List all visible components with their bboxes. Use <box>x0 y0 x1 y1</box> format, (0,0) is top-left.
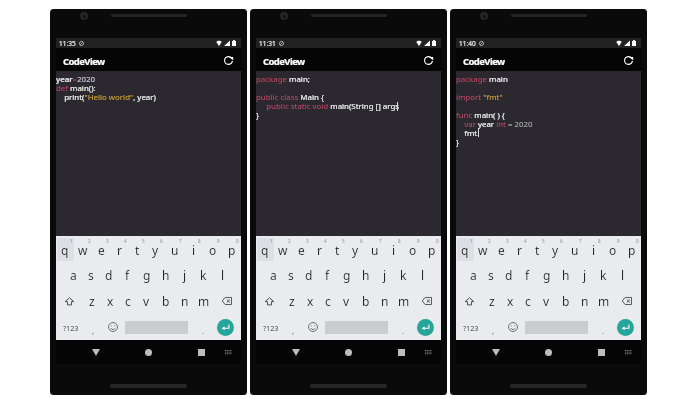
button[interactable]: v <box>337 288 356 314</box>
button[interactable]: i <box>584 236 603 262</box>
button[interactable]: n <box>175 288 194 314</box>
button[interactable]: Backspace <box>213 288 241 314</box>
button[interactable]: p <box>622 236 641 262</box>
button[interactable]: d <box>500 262 518 288</box>
button[interactable]: Emoji <box>303 314 323 340</box>
button[interactable]: l <box>413 262 432 288</box>
button[interactable]: x <box>501 288 519 314</box>
button[interactable]: j <box>575 262 594 288</box>
button[interactable]: h <box>156 262 175 288</box>
button[interactable]: x <box>101 288 119 314</box>
button[interactable]: g <box>537 262 556 288</box>
button[interactable]: Recents <box>389 340 413 364</box>
button[interactable]: z <box>283 288 301 314</box>
button[interactable]: u <box>165 236 184 262</box>
button[interactable]: ?123 <box>256 314 284 340</box>
button[interactable]: s <box>82 262 100 288</box>
button[interactable]: , <box>284 314 303 340</box>
button[interactable]: Refresh <box>220 52 236 68</box>
button[interactable]: c <box>319 288 337 314</box>
button[interactable]: x <box>301 288 319 314</box>
button[interactable]: v <box>137 288 156 314</box>
button[interactable]: l <box>613 262 632 288</box>
button[interactable]: Refresh <box>420 52 436 68</box>
button[interactable]: c <box>519 288 537 314</box>
button[interactable]: Home <box>336 340 360 364</box>
button[interactable]: n <box>575 288 594 314</box>
button[interactable]: i <box>384 236 403 262</box>
button[interactable]: Recents <box>189 340 213 364</box>
button[interactable]: a <box>264 262 282 288</box>
button[interactable]: f <box>518 262 537 288</box>
button[interactable]: Enter <box>617 319 634 336</box>
button[interactable]: q <box>456 236 474 262</box>
button[interactable]: Emoji <box>503 314 523 340</box>
button[interactable]: e <box>492 236 510 262</box>
button[interactable]: o <box>603 236 622 262</box>
button[interactable]: q <box>256 236 274 262</box>
button[interactable]: d <box>300 262 318 288</box>
button[interactable]: g <box>337 262 356 288</box>
button[interactable]: m <box>594 288 613 314</box>
button[interactable]: y <box>346 236 365 262</box>
button[interactable]: e <box>92 236 110 262</box>
button[interactable]: y <box>546 236 565 262</box>
button[interactable]: k <box>594 262 613 288</box>
button[interactable]: e <box>292 236 310 262</box>
button[interactable]: r <box>310 236 328 262</box>
button[interactable]: m <box>194 288 213 314</box>
button[interactable]: Emoji <box>103 314 123 340</box>
button[interactable]: Enter <box>217 319 234 336</box>
button[interactable]: y <box>146 236 165 262</box>
button[interactable]: b <box>556 288 575 314</box>
button[interactable]: Backspace <box>413 288 441 314</box>
button[interactable]: Enter <box>417 319 434 336</box>
button[interactable]: u <box>365 236 384 262</box>
button[interactable]: k <box>394 262 413 288</box>
button[interactable]: r <box>510 236 528 262</box>
button[interactable]: j <box>375 262 394 288</box>
button[interactable]: Change keyboard <box>416 340 440 364</box>
button[interactable]: j <box>175 262 194 288</box>
button[interactable]: t <box>328 236 346 262</box>
button[interactable]: g <box>137 262 156 288</box>
button[interactable]: s <box>482 262 500 288</box>
button[interactable]: Hide keyboard <box>484 340 507 364</box>
button[interactable]: i <box>184 236 203 262</box>
button[interactable]: k <box>194 262 213 288</box>
button[interactable]: c <box>119 288 137 314</box>
button[interactable]: Change keyboard <box>616 340 640 364</box>
button[interactable]: p <box>422 236 441 262</box>
button[interactable]: h <box>356 262 375 288</box>
button[interactable]: z <box>483 288 501 314</box>
button[interactable]: a <box>464 262 482 288</box>
button[interactable]: Refresh <box>620 52 636 68</box>
button[interactable]: p <box>222 236 241 262</box>
button[interactable]: Hide keyboard <box>84 340 107 364</box>
button[interactable]: , <box>84 314 103 340</box>
button[interactable]: Hide keyboard <box>284 340 307 364</box>
button[interactable]: w <box>474 236 492 262</box>
button[interactable]: a <box>64 262 82 288</box>
button[interactable]: Recents <box>589 340 613 364</box>
button[interactable]: Change keyboard <box>216 340 240 364</box>
button[interactable]: o <box>403 236 422 262</box>
button[interactable]: m <box>394 288 413 314</box>
button[interactable]: Shift <box>56 288 83 314</box>
button[interactable]: t <box>528 236 546 262</box>
button[interactable]: Home <box>136 340 160 364</box>
button[interactable]: l <box>213 262 232 288</box>
button[interactable]: s <box>282 262 300 288</box>
button[interactable]: b <box>156 288 175 314</box>
button[interactable]: w <box>274 236 292 262</box>
button[interactable]: q <box>56 236 74 262</box>
button[interactable]: h <box>556 262 575 288</box>
button[interactable]: o <box>203 236 222 262</box>
button[interactable]: b <box>356 288 375 314</box>
button[interactable]: Shift <box>456 288 483 314</box>
